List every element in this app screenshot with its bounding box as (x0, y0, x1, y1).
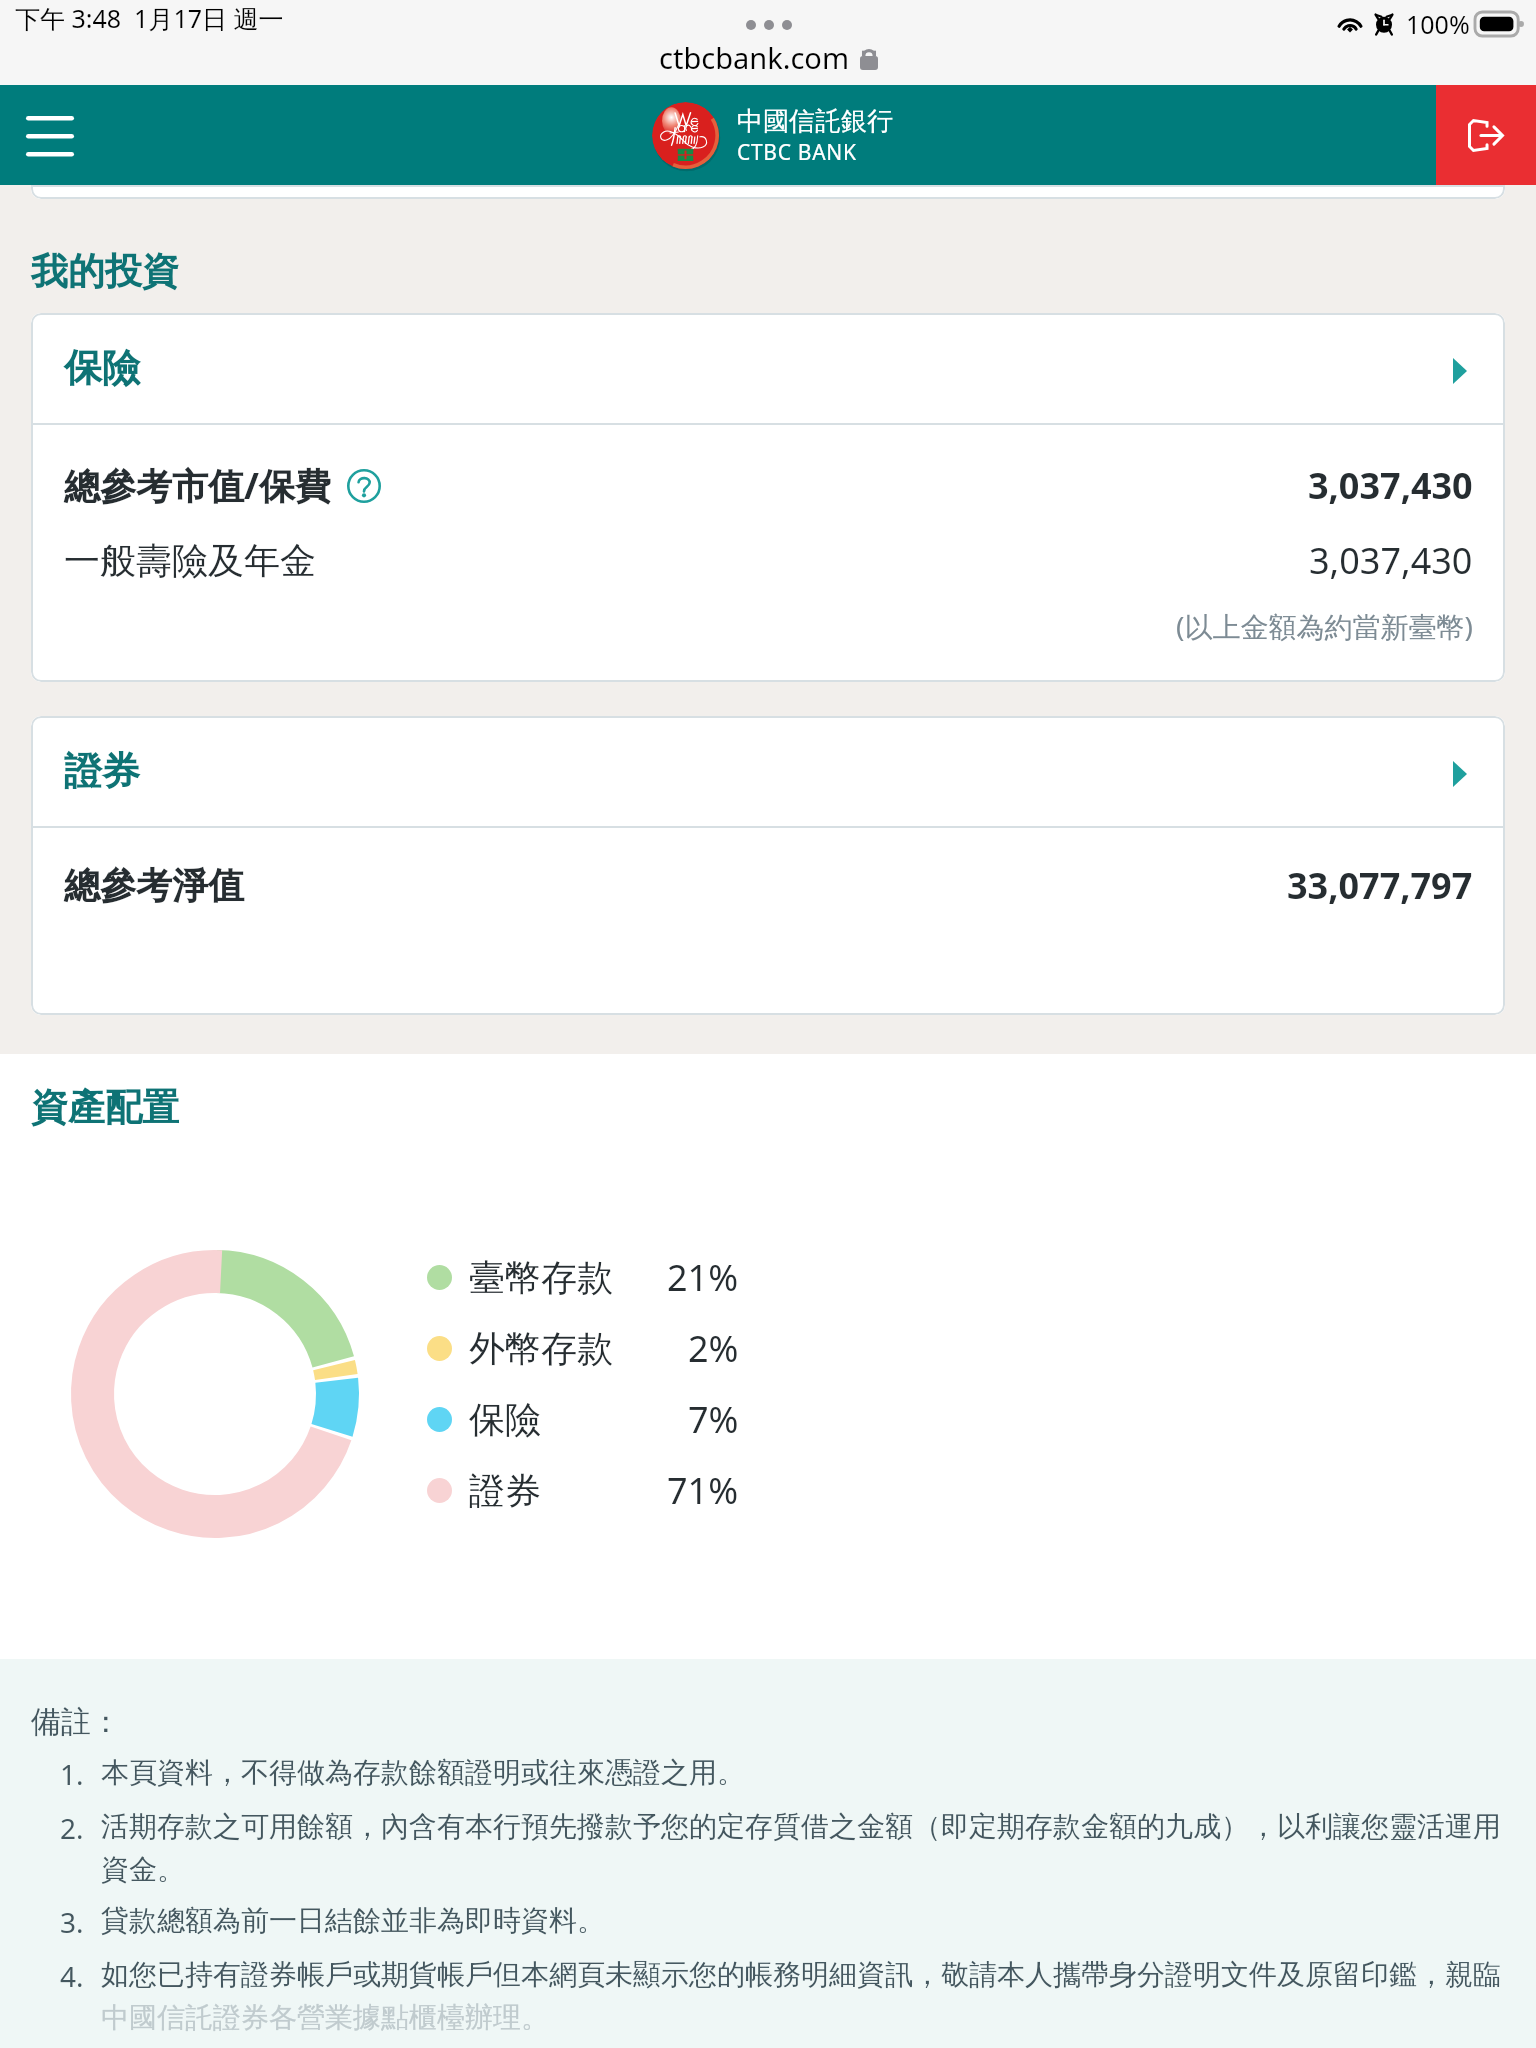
button[interactable]: 保險 (427, 1384, 739, 1455)
staticText: 臺幣存款 (469, 1255, 613, 1300)
staticText: 本頁資料，不得做為存款餘額證明或往來憑證之用。 (101, 1755, 745, 1790)
staticText: 一般壽險及年金 (64, 538, 316, 583)
staticText: 3,037,430 (1308, 461, 1473, 510)
staticText: 100% (1406, 7, 1470, 41)
staticText: (以上金額為約當新臺幣) (1176, 607, 1473, 645)
staticText: 3,037,430 (1309, 536, 1473, 585)
staticText: 備註： (31, 1703, 121, 1741)
button[interactable]: Help (347, 469, 381, 503)
staticText: 保險 (64, 344, 140, 392)
staticText: 71% (667, 1466, 739, 1515)
staticText: 3. (60, 1903, 101, 1941)
staticText: 下午 3:48 1月17日 週一 (15, 1, 284, 35)
staticText: 證券 (64, 747, 140, 795)
staticText: 外幣存款 (469, 1326, 613, 1371)
button[interactable]: 外幣存款 (427, 1313, 739, 1384)
button[interactable]: 證券 (427, 1455, 739, 1526)
staticText: ctbcbank.com (659, 38, 850, 77)
staticText: 33,077,797 (1287, 861, 1473, 910)
staticText: 7% (688, 1395, 739, 1444)
staticText: 4. (60, 1957, 101, 1995)
button[interactable]: 證券 (31, 716, 1505, 826)
staticText: 中國信託銀行 (737, 105, 893, 138)
staticText: 總參考淨值 (64, 863, 244, 908)
button[interactable]: 臺幣存款 (427, 1242, 739, 1313)
staticText: 2% (688, 1324, 739, 1373)
button[interactable]: Menu (0, 85, 100, 185)
staticText: 2. (60, 1809, 101, 1847)
staticText: 總參考市值/保費 (64, 461, 331, 510)
staticText: 我的投資 (31, 248, 179, 295)
staticText: 保險 (469, 1397, 541, 1442)
button[interactable]: 保險 (31, 313, 1505, 423)
staticText: 貸款總額為前一日結餘並非為即時資料。 (101, 1903, 605, 1938)
staticText: 活期存款之可用餘額，內含有本行預先撥款予您的定存質借之金額（即定期存款金額的九成… (101, 1809, 1502, 1887)
staticText: 證券 (469, 1468, 541, 1513)
staticText: 21% (667, 1253, 739, 1302)
button[interactable]: Logout (1436, 85, 1536, 185)
staticText: 資產配置 (31, 1084, 179, 1131)
staticText: CTBC BANK (737, 138, 857, 167)
staticText: 1. (60, 1755, 101, 1793)
staticText: 如您已持有證券帳戶或期貨帳戶但本網頁未顯示您的帳務明細資訊，敬請本人攜帶身分證明… (101, 1957, 1502, 2032)
